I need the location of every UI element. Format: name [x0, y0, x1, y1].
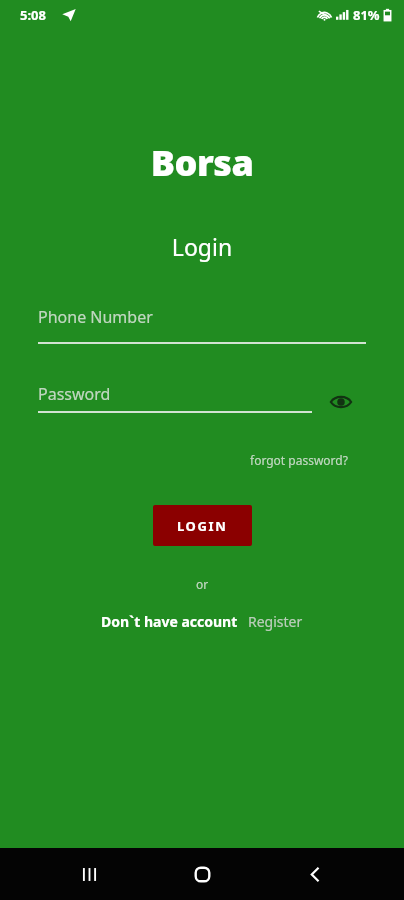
staticText: Register [248, 612, 303, 631]
button[interactable]: Recent apps [65, 850, 113, 898]
button[interactable]: Password [38, 383, 312, 413]
staticText: LOGIN [177, 517, 228, 535]
staticText: or [0, 576, 404, 592]
button[interactable]: Show password [324, 385, 358, 419]
button[interactable]: Home [178, 850, 226, 898]
staticText: Don`t have account [101, 612, 238, 631]
button[interactable]: Phone Number [38, 306, 366, 344]
staticText: Password [38, 383, 111, 405]
button[interactable]: forgot password? [250, 448, 348, 472]
staticText: Borsa [0, 138, 404, 187]
button[interactable]: Register [248, 612, 303, 631]
staticText: Phone Number [38, 306, 153, 328]
staticText: Login [0, 231, 404, 262]
staticText: forgot password? [250, 452, 348, 468]
button[interactable]: Back [291, 850, 339, 898]
staticText: 81% [353, 6, 380, 24]
staticText: 5:08 [20, 6, 46, 24]
button[interactable]: LOGIN [153, 505, 252, 546]
